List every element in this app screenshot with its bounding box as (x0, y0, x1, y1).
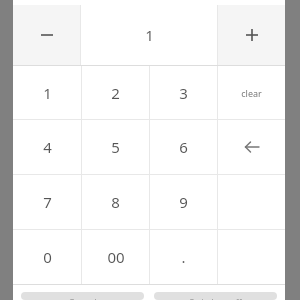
button[interactable]: 8 (82, 175, 149, 229)
button[interactable]: clear (218, 66, 285, 119)
button[interactable]: Minus (13, 5, 80, 65)
button[interactable]: 5 (82, 120, 149, 174)
button[interactable]: 9 (150, 175, 217, 229)
staticText: 9 (179, 192, 188, 212)
staticText: Switch to off (189, 296, 242, 300)
staticText: 4 (43, 137, 52, 157)
button[interactable]: Switch to off (154, 292, 277, 300)
staticText: 6 (179, 137, 188, 157)
staticText: 1 (145, 25, 154, 45)
staticText: 00 (107, 247, 125, 267)
button[interactable]: 2 (82, 66, 149, 119)
staticText: 8 (111, 192, 120, 212)
staticText: . (181, 247, 186, 267)
button[interactable]: 00 (82, 230, 149, 284)
staticText: 7 (43, 192, 52, 212)
button[interactable]: 7 (13, 175, 81, 229)
staticText: 5 (111, 137, 120, 157)
staticText: 3 (179, 83, 188, 103)
button[interactable]: 4 (13, 120, 81, 174)
staticText: Cancel (68, 296, 97, 300)
button[interactable]: 6 (150, 120, 217, 174)
staticText: 2 (111, 83, 120, 103)
button[interactable]: . (150, 230, 217, 284)
staticText: 0 (43, 247, 52, 267)
button[interactable]: 1 (13, 66, 81, 119)
button[interactable]: 0 (13, 230, 81, 284)
button[interactable]: 1 (81, 5, 217, 65)
button[interactable]: Plus (218, 5, 285, 65)
button[interactable]: 3 (150, 66, 217, 119)
button[interactable]: Backspace (218, 120, 285, 174)
staticText: clear (241, 87, 262, 99)
staticText: 1 (43, 83, 52, 103)
button[interactable]: Cancel (21, 292, 144, 300)
